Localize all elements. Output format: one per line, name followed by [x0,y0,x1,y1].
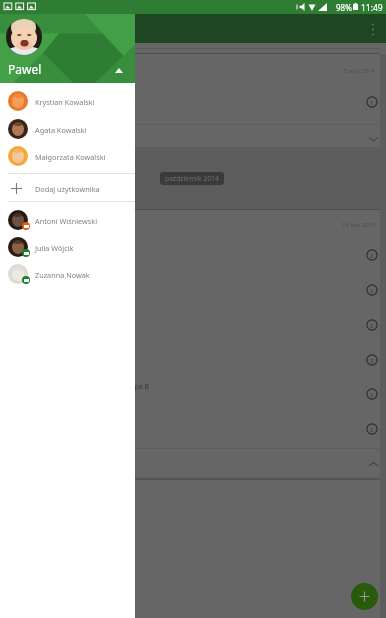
staticText: 5 maj 2014 [344,67,375,75]
button[interactable]: Info [362,350,382,370]
button[interactable]: Info [362,245,382,265]
button[interactable]: Info [362,419,382,439]
button[interactable]: Krystian Kowalski [0,91,135,111]
button[interactable] [6,479,380,618]
staticText: Pawel [8,61,42,77]
staticText: 1 [370,99,374,106]
staticText: Dodaj użytkownika [35,184,100,194]
staticText: 2 [370,252,374,259]
staticText: 98% [336,2,352,13]
staticText: 18 paź 2014 [342,221,376,229]
button[interactable]: 18 paź 2014 [6,209,380,477]
staticText: 2 [370,391,374,398]
button[interactable]: Agata Kowalski [0,119,135,139]
staticText: 2 [370,287,374,294]
button[interactable]: październik 2014 [160,172,224,185]
staticText: 2 [370,426,374,433]
button[interactable]: Julia Wójcik [0,237,135,257]
button[interactable]: Info [362,384,382,404]
button[interactable]: Info [362,315,382,335]
staticText: Małgorzata Kowalski [35,152,106,162]
button[interactable]: Antoni Wiśniewski [0,210,135,230]
button[interactable]: Dodaj użytkownika [0,178,135,199]
staticText: Krystian Kowalski [35,97,95,107]
button[interactable]: Zuzanna Nowak [0,264,135,284]
button[interactable]: Małgorzata Kowalski [0,146,135,166]
staticText: Antoni Wiśniewski [35,216,98,226]
button[interactable]: Add [351,583,378,610]
button[interactable]: Collapse accounts [110,62,128,78]
button[interactable]: Collapse [366,457,380,471]
button[interactable]: More options [360,16,386,43]
staticText: 2 [370,357,374,364]
staticText: Zuzanna Nowak [35,270,90,280]
button[interactable]: Info [362,280,382,300]
staticText: październik 2014 [165,174,219,183]
staticText: Julia Wójcik [35,243,74,253]
staticText: grupa B [123,382,150,392]
button[interactable]: Profile photo [6,19,42,55]
button[interactable]: Expand [366,132,380,146]
button[interactable]: Info [362,92,382,112]
staticText: Agata Kowalski [35,125,87,135]
button[interactable]: 5 maj 2014 [6,53,380,147]
staticText: 2 [370,322,374,329]
staticText: 11:49 [361,2,383,14]
